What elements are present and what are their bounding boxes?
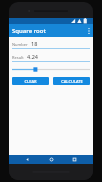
staticText: 18 <box>31 40 38 47</box>
staticText: Number <box>12 42 28 47</box>
button[interactable]: CLEAR <box>12 77 49 85</box>
staticText: Square root <box>12 27 46 35</box>
button[interactable]: Back <box>23 155 32 164</box>
button[interactable] <box>12 66 90 73</box>
staticText: CALCULATE <box>61 79 83 84</box>
staticText: CLEAR <box>24 79 37 84</box>
button[interactable]: Home <box>47 155 56 164</box>
staticText: Result <box>12 55 24 60</box>
button[interactable]: More options <box>84 24 93 37</box>
button[interactable]: Recent apps <box>70 155 79 164</box>
staticText: 4.24 <box>27 53 38 60</box>
button[interactable]: CALCULATE <box>53 77 90 85</box>
